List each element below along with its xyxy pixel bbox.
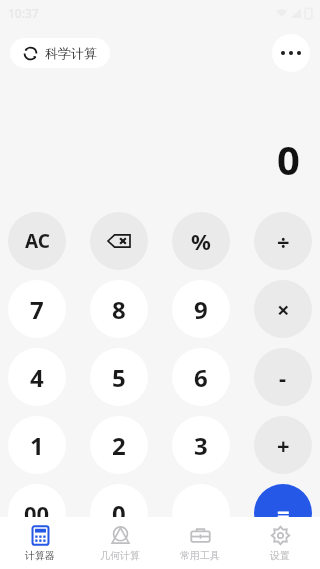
- button[interactable]: 8: [90, 280, 148, 338]
- button[interactable]: -: [254, 348, 312, 406]
- staticText: 10:37: [8, 5, 39, 21]
- button[interactable]: 00: [8, 484, 66, 542]
- staticText: =: [277, 498, 290, 528]
- button[interactable]: Backspace: [90, 212, 148, 270]
- staticText: .: [197, 496, 205, 531]
- button[interactable]: 1: [8, 416, 66, 474]
- button[interactable]: 几何计算: [80, 517, 160, 569]
- button[interactable]: ×: [254, 280, 312, 338]
- staticText: -: [279, 362, 287, 392]
- staticText: 00: [24, 498, 50, 528]
- staticText: 设置: [270, 549, 290, 562]
- staticText: 7: [30, 293, 44, 326]
- button[interactable]: 常用工具: [160, 517, 240, 569]
- staticText: 0: [112, 497, 126, 530]
- button[interactable]: 2: [90, 416, 148, 474]
- staticText: 1: [30, 429, 44, 462]
- button[interactable]: 5: [90, 348, 148, 406]
- staticText: 9: [194, 293, 208, 326]
- button[interactable]: More options: [272, 34, 310, 72]
- button[interactable]: ÷: [254, 212, 312, 270]
- staticText: 2: [112, 429, 126, 462]
- button[interactable]: 科学计算: [10, 38, 110, 68]
- button[interactable]: 设置: [240, 517, 320, 569]
- button[interactable]: .: [172, 484, 230, 542]
- button[interactable]: AC: [8, 212, 66, 270]
- staticText: 常用工具: [180, 549, 220, 562]
- button[interactable]: 9: [172, 280, 230, 338]
- button[interactable]: 7: [8, 280, 66, 338]
- staticText: AC: [25, 228, 50, 254]
- staticText: 几何计算: [100, 549, 140, 562]
- staticText: 4: [30, 361, 44, 394]
- staticText: 5: [112, 361, 126, 394]
- button[interactable]: 6: [172, 348, 230, 406]
- button[interactable]: =: [254, 484, 312, 542]
- button[interactable]: +: [254, 416, 312, 474]
- button[interactable]: 4: [8, 348, 66, 406]
- staticText: 3: [194, 429, 208, 462]
- staticText: +: [277, 430, 290, 460]
- button[interactable]: 3: [172, 416, 230, 474]
- staticText: 科学计算: [45, 45, 97, 61]
- button[interactable]: 计算器: [0, 517, 80, 569]
- staticText: 6: [194, 361, 208, 394]
- staticText: 8: [112, 293, 126, 326]
- staticText: 0: [277, 132, 300, 184]
- staticText: ×: [277, 294, 290, 324]
- button[interactable]: %: [172, 212, 230, 270]
- button[interactable]: 0: [90, 484, 148, 542]
- staticText: 计算器: [25, 549, 55, 562]
- staticText: ÷: [277, 226, 290, 256]
- staticText: %: [191, 226, 211, 256]
